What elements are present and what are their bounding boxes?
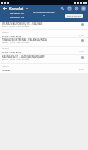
button[interactable]: Vežėjas (0, 30, 88, 38)
staticText: KEISTI KRYPTĮ (67, 15, 81, 18)
staticText: 2019-09-05 KETVIRT. (33, 11, 55, 14)
staticText: 06:30 - 11:05 4 val. 35 min. (2, 41, 30, 44)
staticText: KAUNAS/A.ST. - LAZDIJAI/MARIJAMP. (2, 55, 45, 58)
button[interactable]: TRAKAI/ELEKTRĖNAI - PALANGA/NIDA (0, 37, 88, 46)
staticText: 08:10 - 12:45 4 val. 35 min. (2, 58, 30, 61)
staticText: VILNIUS AS (10, 11, 24, 14)
staticText: KAUNAS AS (10, 15, 24, 18)
staticText: 1,5 € (79, 50, 84, 53)
button[interactable]: Back (0, 5, 9, 12)
staticText: Vežėjas (2, 47, 9, 50)
button[interactable]: More options (80, 5, 87, 12)
staticText: Vežėjas (2, 65, 9, 68)
staticText: TRAKAI/ELEKTRĖNAI - PALANGA/NIDA (2, 38, 47, 41)
staticText: 05:15 - 06:45 1 val. 30 min. (2, 25, 30, 28)
staticText: Vežėjas (2, 31, 9, 34)
button[interactable]: Calendar (66, 5, 73, 12)
button[interactable]: Search (59, 5, 66, 12)
staticText: Rt.Var / Way Bose (2, 51, 22, 54)
staticText: 1,5 € (79, 34, 84, 37)
staticText: Rt.Var / Way Bose (2, 35, 22, 38)
button[interactable]: Vežėjas (0, 46, 88, 54)
button[interactable]: VILNIUS/AUTOBUSŲ ST. - KAUNAS (0, 22, 88, 30)
staticText: Kanalai (9, 6, 24, 12)
button[interactable]: Vežėjas (0, 63, 88, 73)
staticText: VILNIUS/AUTOBUSŲ ST. - KAUNAS (2, 22, 43, 25)
button[interactable]: KAUNAS/A.ST. - LAZDIJAI/MARIJAMP. (0, 54, 88, 63)
button[interactable]: Refresh (73, 5, 80, 12)
staticText: 2,8 € (79, 68, 84, 71)
button[interactable]: KEISTI KRYPTĮ (65, 14, 83, 18)
staticText: Vežėjas (2, 69, 11, 72)
